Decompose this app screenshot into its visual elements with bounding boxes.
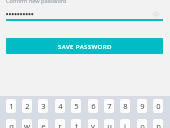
staticText: 8 — [123, 101, 128, 111]
button[interactable]: 4 — [55, 99, 65, 113]
button[interactable]: 5 — [71, 99, 81, 113]
button[interactable]: e — [38, 119, 48, 128]
staticText: i — [124, 121, 126, 128]
staticText: 6 — [91, 101, 96, 111]
button[interactable]: r — [55, 119, 65, 128]
staticText: 7 — [107, 101, 112, 111]
staticText: SAVE PASSWORD — [58, 42, 112, 50]
button[interactable]: 3 — [38, 99, 48, 113]
staticText: w — [24, 121, 30, 128]
button[interactable]: 7 — [104, 99, 114, 113]
staticText: Confirm new password — [6, 0, 67, 5]
staticText: t — [75, 121, 78, 128]
staticText: r — [58, 121, 62, 128]
staticText: 5 — [74, 101, 79, 111]
button[interactable]: 8 — [120, 99, 130, 113]
button[interactable]: y — [88, 119, 98, 128]
button[interactable]: u — [104, 119, 114, 128]
staticText: o — [140, 121, 145, 128]
staticText: e — [41, 121, 46, 128]
staticText: y — [91, 121, 95, 128]
button[interactable]: Show password — [149, 7, 163, 21]
button[interactable]: SAVE PASSWORD — [6, 38, 163, 54]
staticText: 2 — [25, 101, 30, 111]
staticText: 1 — [9, 101, 14, 111]
button[interactable]: 6 — [88, 99, 98, 113]
button[interactable]: 1 — [6, 99, 16, 113]
staticText: q — [9, 121, 14, 128]
button[interactable]: w — [22, 119, 32, 128]
button[interactable]: 0 — [153, 99, 163, 113]
button[interactable]: i — [120, 119, 130, 128]
staticText: 4 — [58, 101, 63, 111]
staticText: p — [156, 121, 161, 128]
button[interactable]: t — [71, 119, 81, 128]
button[interactable]: 2 — [22, 99, 32, 113]
staticText: u — [107, 121, 112, 128]
button[interactable]: q — [6, 119, 16, 128]
staticText: 9 — [140, 101, 145, 111]
staticText: 3 — [41, 101, 46, 111]
button[interactable]: 9 — [137, 99, 147, 113]
staticText: 0 — [156, 101, 161, 111]
button[interactable]: p — [153, 119, 163, 128]
button[interactable]: o — [137, 119, 147, 128]
